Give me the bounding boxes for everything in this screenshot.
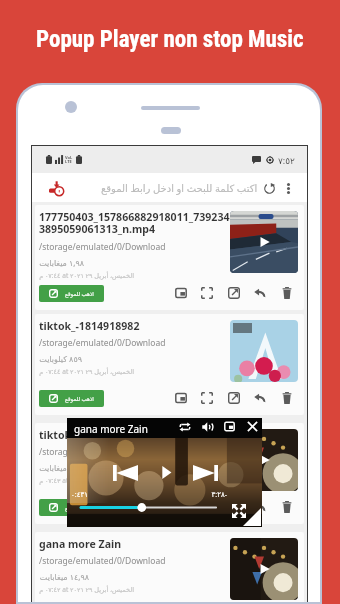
staticText: /storage/emulated/0/Download — [39, 337, 166, 349]
staticText: ١٤,٩٨ ميغابايت — [39, 571, 89, 582]
staticText: /storage/emulated/0/Download — [39, 446, 166, 458]
button[interactable]: Picture in picture — [172, 284, 190, 302]
staticText: tiktok_-1814918982 — [39, 428, 140, 442]
staticText: الخميس، أبريل ٢٩ ٢٠٢١ at ٠٧:٤٤ م — [39, 367, 134, 376]
staticText: ٧:٥٢ — [278, 154, 295, 166]
button[interactable]: اذهب للموقع — [39, 390, 104, 407]
staticText: gana more Zain — [74, 422, 148, 436]
button[interactable]: Delete — [278, 389, 296, 407]
button[interactable]: Fullscreen — [198, 498, 216, 516]
staticText: gana more Zain — [39, 537, 122, 551]
button[interactable]: Fullscreen — [198, 284, 216, 302]
button[interactable]: Fullscreen — [198, 389, 216, 407]
staticText: 177750403_157866882918011_73923438950590… — [39, 210, 234, 237]
button[interactable]: tiktok_-1814918982 — [35, 423, 304, 524]
button[interactable]: Share — [251, 389, 269, 407]
staticText: اذهب للموقع — [65, 504, 94, 511]
staticText: VoL LTE — [65, 155, 73, 164]
button[interactable]: 177750403_157866882918011_73923438950590… — [35, 205, 304, 310]
staticText: ٠:٤٣١ — [71, 490, 88, 500]
staticText: الخميس، أبريل ٢٩ ٢٠٢١ at ٠٧:٤٤ م — [39, 271, 134, 280]
button[interactable]: gana more Zain — [35, 532, 304, 602]
button[interactable]: Open — [225, 284, 243, 302]
button[interactable]: Downloads — [48, 180, 64, 196]
staticText: /storage/emulated/0/Download — [39, 555, 166, 567]
staticText: ١,٩٨ ميغابايت — [39, 462, 84, 473]
button[interactable]: اذهب للموقع — [39, 499, 104, 516]
button[interactable]: Open — [225, 498, 243, 516]
button[interactable]: tiktok_-1814918982 — [35, 314, 304, 415]
button[interactable]: Share — [251, 498, 269, 516]
button[interactable]: Picture in picture — [223, 420, 236, 433]
staticText: الخميس، أبريل ٢٩ ٢٠٢١ at ٠٧:٤٢ م — [39, 585, 134, 594]
staticText: -٣:٢٨ — [211, 490, 227, 500]
button[interactable]: Delete — [278, 284, 296, 302]
staticText: Popup Player non stop Music — [36, 26, 304, 53]
button[interactable]: Picture in picture — [172, 389, 190, 407]
staticText: ١,٩٨ ميغابايت — [39, 257, 84, 268]
button[interactable]: Volume — [201, 420, 214, 433]
button[interactable]: Refresh — [260, 179, 278, 197]
button[interactable]: Share — [251, 284, 269, 302]
staticText: اذهب للموقع — [65, 290, 94, 297]
staticText: /storage/emulated/0/Download — [39, 241, 166, 253]
button[interactable]: Close — [246, 420, 259, 433]
button[interactable]: Open — [225, 389, 243, 407]
staticText: ٨٥٩ كيلوبايت — [39, 353, 82, 364]
staticText: tiktok_-1814918982 — [39, 319, 140, 333]
button[interactable]: Delete — [278, 498, 296, 516]
button[interactable]: More options — [279, 179, 297, 197]
button[interactable]: Repeat — [178, 420, 191, 433]
button[interactable]: Picture in picture — [172, 498, 190, 516]
button[interactable]: اذهب للموقع — [39, 285, 104, 302]
staticText: اذهب للموقع — [65, 395, 94, 402]
staticText: اكتب كلمة للبحث او ادخل رابط الموقع — [101, 181, 258, 195]
staticText: الخميس، أبريل ٢٩ ٢٠٢١ at ٠٧:٤٣ م — [39, 476, 134, 485]
